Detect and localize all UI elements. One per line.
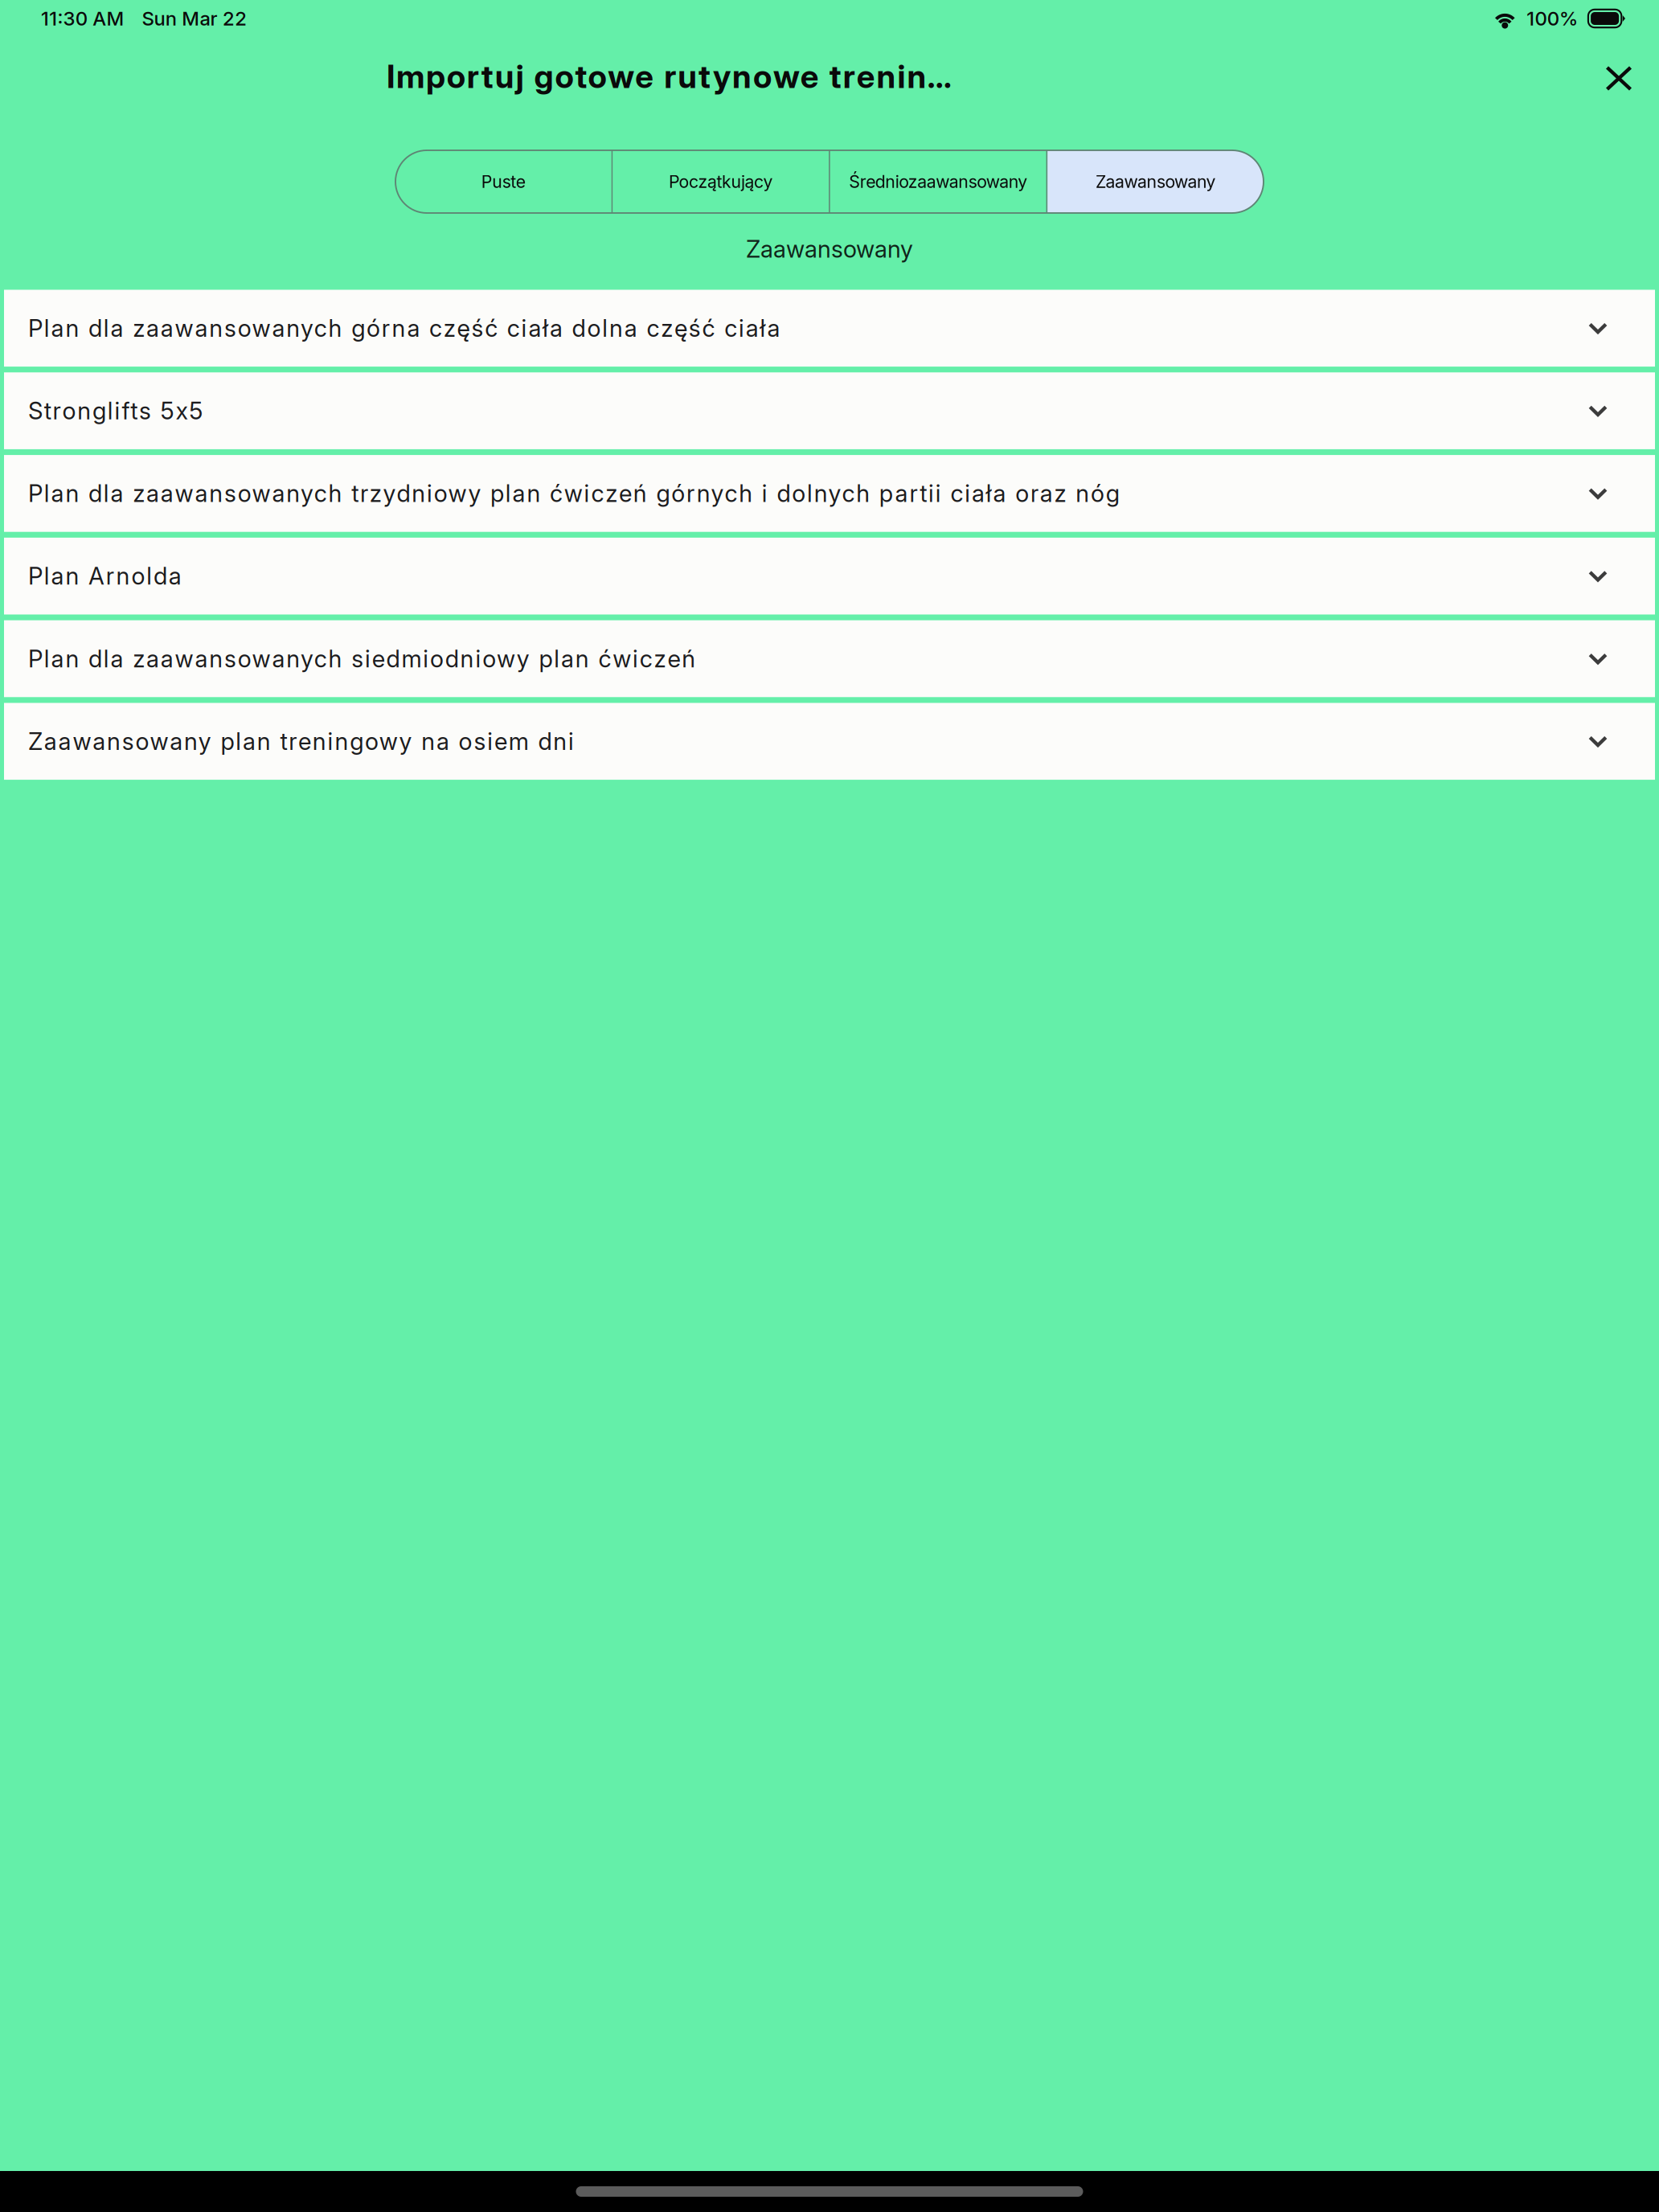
staticText: Zaawansowany: [746, 235, 913, 263]
staticText: Średniozaawansowany: [849, 171, 1027, 192]
button[interactable]: Puste: [395, 150, 611, 213]
staticText: Importuj gotowe rutynowe treningi: [387, 57, 957, 96]
staticText: Plan Arnolda: [28, 562, 181, 590]
button[interactable]: Close: [1594, 49, 1644, 103]
staticText: Zaawansowany plan treningowy na osiem dn…: [28, 727, 574, 756]
button[interactable]: Stronglifts 5x5: [4, 372, 1655, 449]
staticText: 11:30 AM: [41, 7, 124, 30]
staticText: Puste: [481, 171, 526, 192]
button[interactable]: Plan dla zaawansowanych siedmiodniowy pl…: [4, 620, 1655, 697]
staticText: Stronglifts 5x5: [28, 397, 203, 425]
staticText: Początkujący: [669, 171, 773, 192]
staticText: 100%: [1527, 7, 1578, 30]
button[interactable]: Średniozaawansowany: [830, 150, 1046, 213]
staticText: Zaawansowany: [1095, 171, 1216, 192]
button[interactable]: Zaawansowany plan treningowy na osiem dn…: [4, 703, 1655, 780]
button[interactable]: Plan Arnolda: [4, 538, 1655, 614]
staticText: Plan dla zaawansowanych górna część ciał…: [28, 314, 780, 342]
staticText: Plan dla zaawansowanych siedmiodniowy pl…: [28, 644, 695, 673]
button[interactable]: Plan dla zaawansowanych górna część ciał…: [4, 290, 1655, 367]
staticText: Plan dla zaawansowanych trzydniowy plan …: [28, 479, 1120, 508]
staticText: Sun Mar 22: [142, 7, 247, 30]
button[interactable]: Plan dla zaawansowanych trzydniowy plan …: [4, 455, 1655, 532]
button[interactable]: Początkujący: [613, 150, 829, 213]
button[interactable]: Zaawansowany: [1048, 150, 1264, 213]
